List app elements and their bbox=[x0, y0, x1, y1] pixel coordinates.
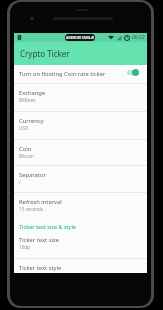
staticText: Currency bbox=[19, 117, 44, 125]
staticText: USD bbox=[19, 125, 29, 131]
button[interactable]: Exchange bbox=[14, 84, 147, 111]
staticText: Crypto Ticker bbox=[20, 48, 70, 59]
staticText: 06:02 bbox=[132, 34, 145, 41]
staticText: Bitcoin bbox=[19, 153, 34, 159]
button[interactable]: Turn on floating Coin rate ticker bbox=[14, 65, 147, 83]
staticText: Turn on floating Coin rate ticker bbox=[19, 70, 125, 78]
staticText: 15 seconds bbox=[19, 206, 44, 212]
staticText: / bbox=[19, 179, 21, 185]
staticText: Bitfinex bbox=[19, 97, 36, 103]
staticText: 10dp bbox=[19, 244, 30, 250]
staticText: Refresh interval bbox=[19, 198, 62, 206]
staticText: Exchange bbox=[19, 89, 46, 97]
button[interactable]: Coin bbox=[14, 140, 147, 165]
button[interactable]: Ticker text style bbox=[14, 259, 147, 273]
button[interactable]: Refresh interval bbox=[14, 193, 147, 218]
staticText: Ticker text style bbox=[19, 264, 62, 272]
staticText: Separator bbox=[19, 171, 46, 179]
staticText: Ticker text size bbox=[19, 236, 59, 244]
staticText: Coin bbox=[19, 145, 32, 153]
staticText: Ticker text size & style bbox=[19, 223, 76, 230]
button[interactable]: Currency bbox=[14, 112, 147, 139]
staticText: ANDROID EMULATOR bbox=[66, 36, 94, 40]
button[interactable]: Ticker text size bbox=[14, 231, 147, 258]
button[interactable]: Separator bbox=[14, 166, 147, 192]
